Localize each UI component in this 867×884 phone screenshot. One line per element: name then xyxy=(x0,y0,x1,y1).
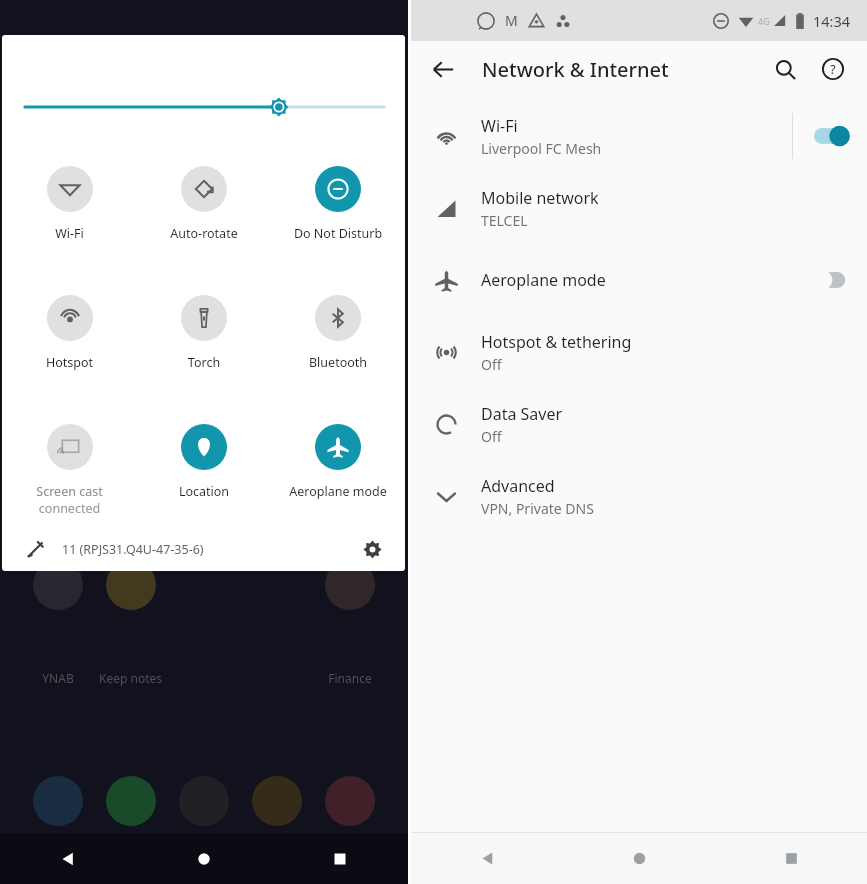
button[interactable]: Mobile network xyxy=(411,172,867,244)
staticText: Mobile network xyxy=(481,187,599,209)
staticText: Hotspot xyxy=(2,354,137,371)
staticText: M xyxy=(505,11,518,30)
button[interactable]: Bluetooth xyxy=(271,274,405,403)
staticText: Finance xyxy=(328,670,372,686)
staticText: Auto-rotate xyxy=(137,225,271,242)
button[interactable]: Recents xyxy=(272,833,408,884)
staticText: Aeroplane mode xyxy=(271,483,405,500)
button[interactable]: Aeroplane mode xyxy=(411,244,867,316)
button[interactable]: Settings xyxy=(357,534,387,564)
button[interactable]: Back xyxy=(411,833,563,884)
button[interactable]: Screen cast xyxy=(2,403,137,532)
staticText: Off xyxy=(481,427,502,446)
staticText: Location xyxy=(137,483,271,500)
staticText: Aeroplane mode xyxy=(481,269,606,291)
button[interactable]: Location xyxy=(137,403,271,532)
staticText: Wi-Fi xyxy=(481,115,518,137)
button[interactable]: Recents xyxy=(715,833,867,884)
button[interactable]: Wi-Fi toggle xyxy=(793,100,867,172)
staticText: Wi-Fi xyxy=(2,225,137,242)
button[interactable]: Home xyxy=(563,833,715,884)
button[interactable]: Hotspot & tethering xyxy=(411,316,867,388)
staticText: YNAB xyxy=(42,670,74,686)
button[interactable]: Edit xyxy=(20,534,50,564)
button[interactable]: Help xyxy=(811,47,855,91)
staticText: 4G xyxy=(758,15,770,27)
staticText: TELCEL xyxy=(481,211,528,230)
staticText: Torch xyxy=(137,354,271,371)
staticText: Bluetooth xyxy=(271,354,405,371)
button[interactable]: Auto-rotate xyxy=(137,145,271,274)
staticText: Liverpool FC Mesh xyxy=(481,139,602,158)
staticText: Advanced xyxy=(481,475,555,497)
staticText: VPN, Private DNS xyxy=(481,499,594,518)
button[interactable]: Back xyxy=(421,47,465,91)
staticText: connected xyxy=(2,500,137,517)
button[interactable]: Back xyxy=(0,833,136,884)
button[interactable]: Aeroplane mode toggle xyxy=(793,244,867,316)
staticText: Network & Internet xyxy=(482,56,669,83)
button[interactable]: Advanced xyxy=(411,460,867,532)
staticText: Keep notes xyxy=(99,670,162,686)
button[interactable]: Do Not Disturb xyxy=(271,145,405,274)
staticText: ? xyxy=(830,60,836,78)
button[interactable]: Wi-Fi xyxy=(2,145,137,274)
button[interactable]: Torch xyxy=(137,274,271,403)
button[interactable]: Aeroplane mode xyxy=(271,403,405,532)
button[interactable]: Search xyxy=(763,47,807,91)
button[interactable]: Hotspot xyxy=(2,274,137,403)
staticText: Data Saver xyxy=(481,403,563,425)
staticText: 11 (RPJS31.Q4U-47-35-6) xyxy=(62,541,204,558)
button[interactable]: Data Saver xyxy=(411,388,867,460)
staticText: Off xyxy=(481,355,502,374)
staticText: Do Not Disturb xyxy=(271,225,405,242)
staticText: Screen cast xyxy=(2,483,137,500)
staticText: Hotspot & tethering xyxy=(481,331,632,353)
button[interactable]: Wi-Fi xyxy=(411,100,867,172)
staticText: 14:34 xyxy=(813,11,851,31)
button[interactable]: Home xyxy=(136,833,272,884)
